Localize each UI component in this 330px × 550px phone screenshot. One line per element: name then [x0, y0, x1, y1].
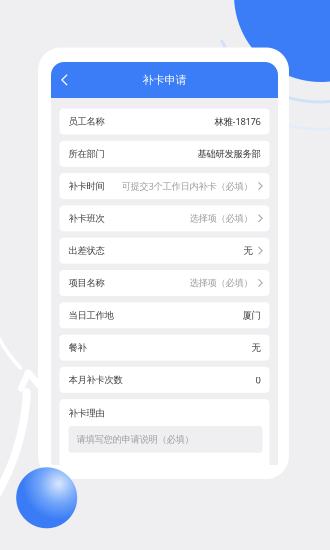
- staticText: 补卡理由: [68, 407, 104, 419]
- staticText: 餐补: [68, 342, 86, 353]
- staticText: 当日工作地: [68, 309, 113, 321]
- button[interactable]: 所在部门: [59, 141, 269, 167]
- button[interactable]: 出差状态: [59, 238, 269, 264]
- button[interactable]: 项目名称: [59, 270, 269, 296]
- staticText: 员工名称: [68, 116, 104, 127]
- staticText: 项目名称: [68, 277, 104, 289]
- button[interactable]: 员工名称: [59, 108, 269, 134]
- staticText: 出差状态: [68, 245, 104, 257]
- button[interactable]: 补卡时间: [59, 173, 269, 199]
- staticText: 林雅-18176: [214, 115, 260, 128]
- staticText: 无: [243, 245, 252, 257]
- staticText: 0: [255, 373, 260, 386]
- staticText: 无: [251, 342, 260, 353]
- staticText: 所在部门: [68, 148, 104, 160]
- staticText: 本月补卡次数: [68, 374, 122, 386]
- staticText: 厦门: [242, 309, 260, 321]
- staticText: 选择项（必填）: [189, 212, 252, 224]
- button[interactable]: 当日工作地: [59, 302, 269, 328]
- staticText: 补卡班次: [68, 212, 104, 224]
- button[interactable]: 餐补: [59, 335, 269, 361]
- staticText: 补卡申请: [142, 73, 186, 87]
- staticText: 补卡时间: [68, 180, 104, 192]
- button[interactable]: 本月补卡次数: [59, 367, 269, 393]
- button[interactable]: Back: [51, 62, 78, 98]
- staticText: 选择项（必填）: [189, 277, 252, 289]
- staticText: 请填写您的申请说明（必填）: [76, 433, 193, 445]
- staticText: 基础研发服务部: [197, 148, 260, 160]
- staticText: 可提交3个工作日内补卡（必填）: [121, 180, 252, 192]
- button[interactable]: 补卡班次: [59, 205, 269, 231]
